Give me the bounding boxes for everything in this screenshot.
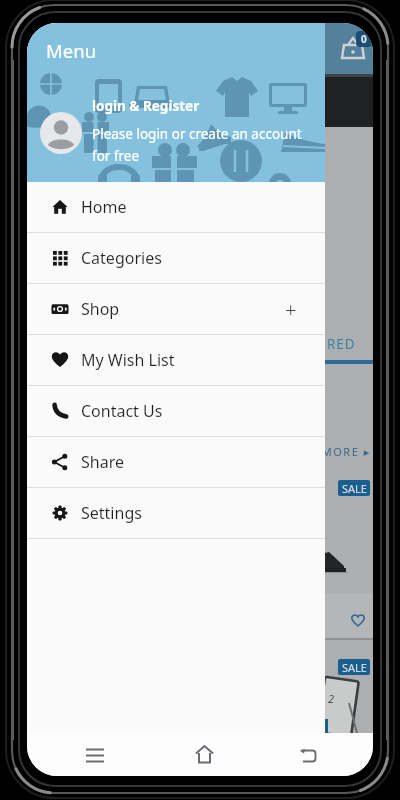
button[interactable]: Share (27, 437, 325, 488)
button[interactable]: My Wish List (27, 335, 325, 386)
button[interactable]: Home (27, 182, 325, 233)
button[interactable]: Settings (27, 488, 325, 539)
staticText: Share (81, 451, 124, 473)
staticText: SHOP MORE ▸ (282, 444, 371, 459)
button[interactable]: Categories (27, 233, 325, 284)
staticText: + (285, 296, 297, 323)
button[interactable]: Contact Us (27, 386, 325, 437)
staticText: login & Register (92, 97, 200, 115)
staticText: SALE (342, 660, 367, 675)
staticText: Contact Us (81, 400, 163, 422)
button[interactable] (85, 747, 105, 763)
staticText: Shop (81, 298, 120, 320)
staticText: 2 (328, 691, 335, 706)
staticText: SALE (342, 481, 367, 496)
button[interactable] (195, 745, 214, 764)
staticText: FEATURED (283, 335, 356, 353)
staticText: Home (81, 196, 127, 218)
button[interactable]: login & Register (27, 74, 325, 182)
staticText: Categories (81, 247, 162, 269)
button[interactable] (299, 749, 317, 763)
button[interactable]: Menu (27, 23, 325, 74)
staticText: Please login or create an account for fr… (92, 125, 302, 165)
staticText: My Wish List (81, 349, 175, 371)
staticText: Settings (81, 502, 142, 524)
staticText: 0 (361, 32, 367, 46)
button[interactable]: Shop (27, 284, 325, 335)
staticText: Menu (46, 38, 97, 63)
